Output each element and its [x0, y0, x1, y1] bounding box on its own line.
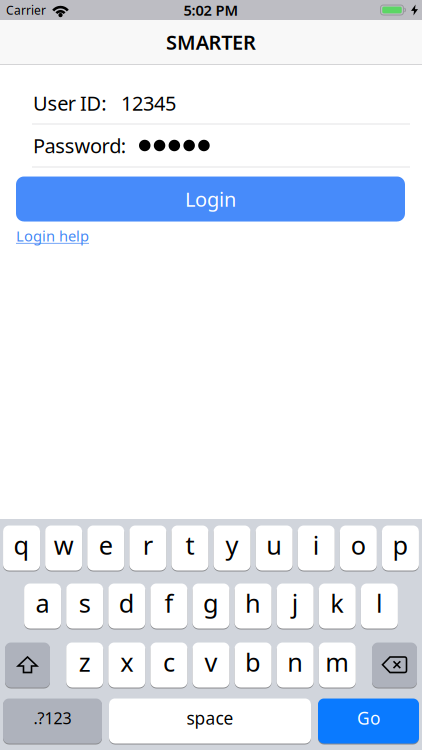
button[interactable]: n — [277, 642, 314, 688]
staticText: a — [36, 586, 50, 620]
staticText: r — [143, 528, 153, 562]
button[interactable]: .?123 — [3, 698, 102, 744]
staticText: h — [245, 586, 261, 620]
button[interactable]: z — [66, 642, 103, 688]
staticText: Login help — [16, 226, 89, 245]
button[interactable]: User ID: — [0, 82, 422, 123]
staticText: z — [79, 645, 91, 679]
staticText: p — [392, 528, 408, 562]
button[interactable]: t — [171, 525, 208, 571]
staticText: 5:02 PM — [183, 0, 238, 20]
button[interactable]: o — [340, 525, 377, 571]
staticText: Password: — [33, 132, 126, 159]
button[interactable]: d — [108, 583, 145, 629]
button[interactable]: y — [214, 525, 251, 571]
staticText: .?123 — [33, 707, 71, 729]
button[interactable]: s — [66, 583, 103, 629]
button[interactable]: u — [256, 525, 293, 571]
button[interactable]: b — [235, 642, 272, 688]
staticText: c — [163, 645, 175, 679]
staticText: b — [245, 645, 261, 679]
button[interactable]: e — [87, 525, 124, 571]
staticText: k — [330, 586, 344, 620]
staticText: o — [351, 528, 366, 562]
button[interactable]: g — [192, 583, 229, 629]
staticText: f — [164, 586, 173, 620]
button[interactable]: Password: — [0, 124, 422, 166]
button[interactable]: x — [108, 642, 145, 688]
staticText: n — [287, 645, 303, 679]
staticText: Carrier — [6, 2, 46, 18]
button[interactable]: Shift — [5, 642, 50, 688]
staticText: q — [14, 528, 30, 562]
button[interactable]: i — [298, 525, 335, 571]
button[interactable]: h — [235, 583, 272, 629]
button[interactable]: r — [129, 525, 166, 571]
staticText: e — [99, 528, 113, 562]
staticText: w — [54, 528, 74, 562]
button[interactable]: m — [319, 642, 356, 688]
button[interactable]: v — [192, 642, 229, 688]
staticText: y — [226, 528, 239, 562]
button[interactable]: space — [109, 698, 311, 744]
button[interactable]: c — [150, 642, 187, 688]
button[interactable]: q — [3, 525, 40, 571]
staticText: SMARTER — [166, 29, 256, 55]
staticText: v — [204, 645, 217, 679]
button[interactable]: f — [150, 583, 187, 629]
staticText: i — [313, 528, 320, 562]
button[interactable]: Delete — [372, 642, 417, 688]
staticText: d — [119, 586, 135, 620]
staticText: m — [325, 645, 349, 679]
staticText: g — [203, 586, 219, 620]
staticText: l — [376, 586, 383, 620]
staticText: space — [186, 706, 233, 729]
staticText: j — [292, 586, 299, 620]
button[interactable]: a — [24, 583, 61, 629]
button[interactable]: j — [277, 583, 314, 629]
button[interactable]: Login — [16, 176, 405, 221]
staticText: u — [266, 528, 282, 562]
button[interactable]: p — [382, 525, 419, 571]
button[interactable]: k — [319, 583, 356, 629]
button[interactable]: Login help — [0, 226, 89, 245]
staticText: x — [120, 645, 133, 679]
staticText: s — [79, 586, 91, 620]
staticText: 12345 — [121, 90, 176, 116]
staticText: Go — [357, 706, 380, 729]
staticText: Login — [185, 186, 236, 212]
staticText: t — [185, 528, 194, 562]
button[interactable]: w — [45, 525, 82, 571]
button[interactable]: Go — [318, 698, 419, 744]
staticText: User ID: — [33, 90, 106, 116]
button[interactable]: l — [361, 583, 398, 629]
